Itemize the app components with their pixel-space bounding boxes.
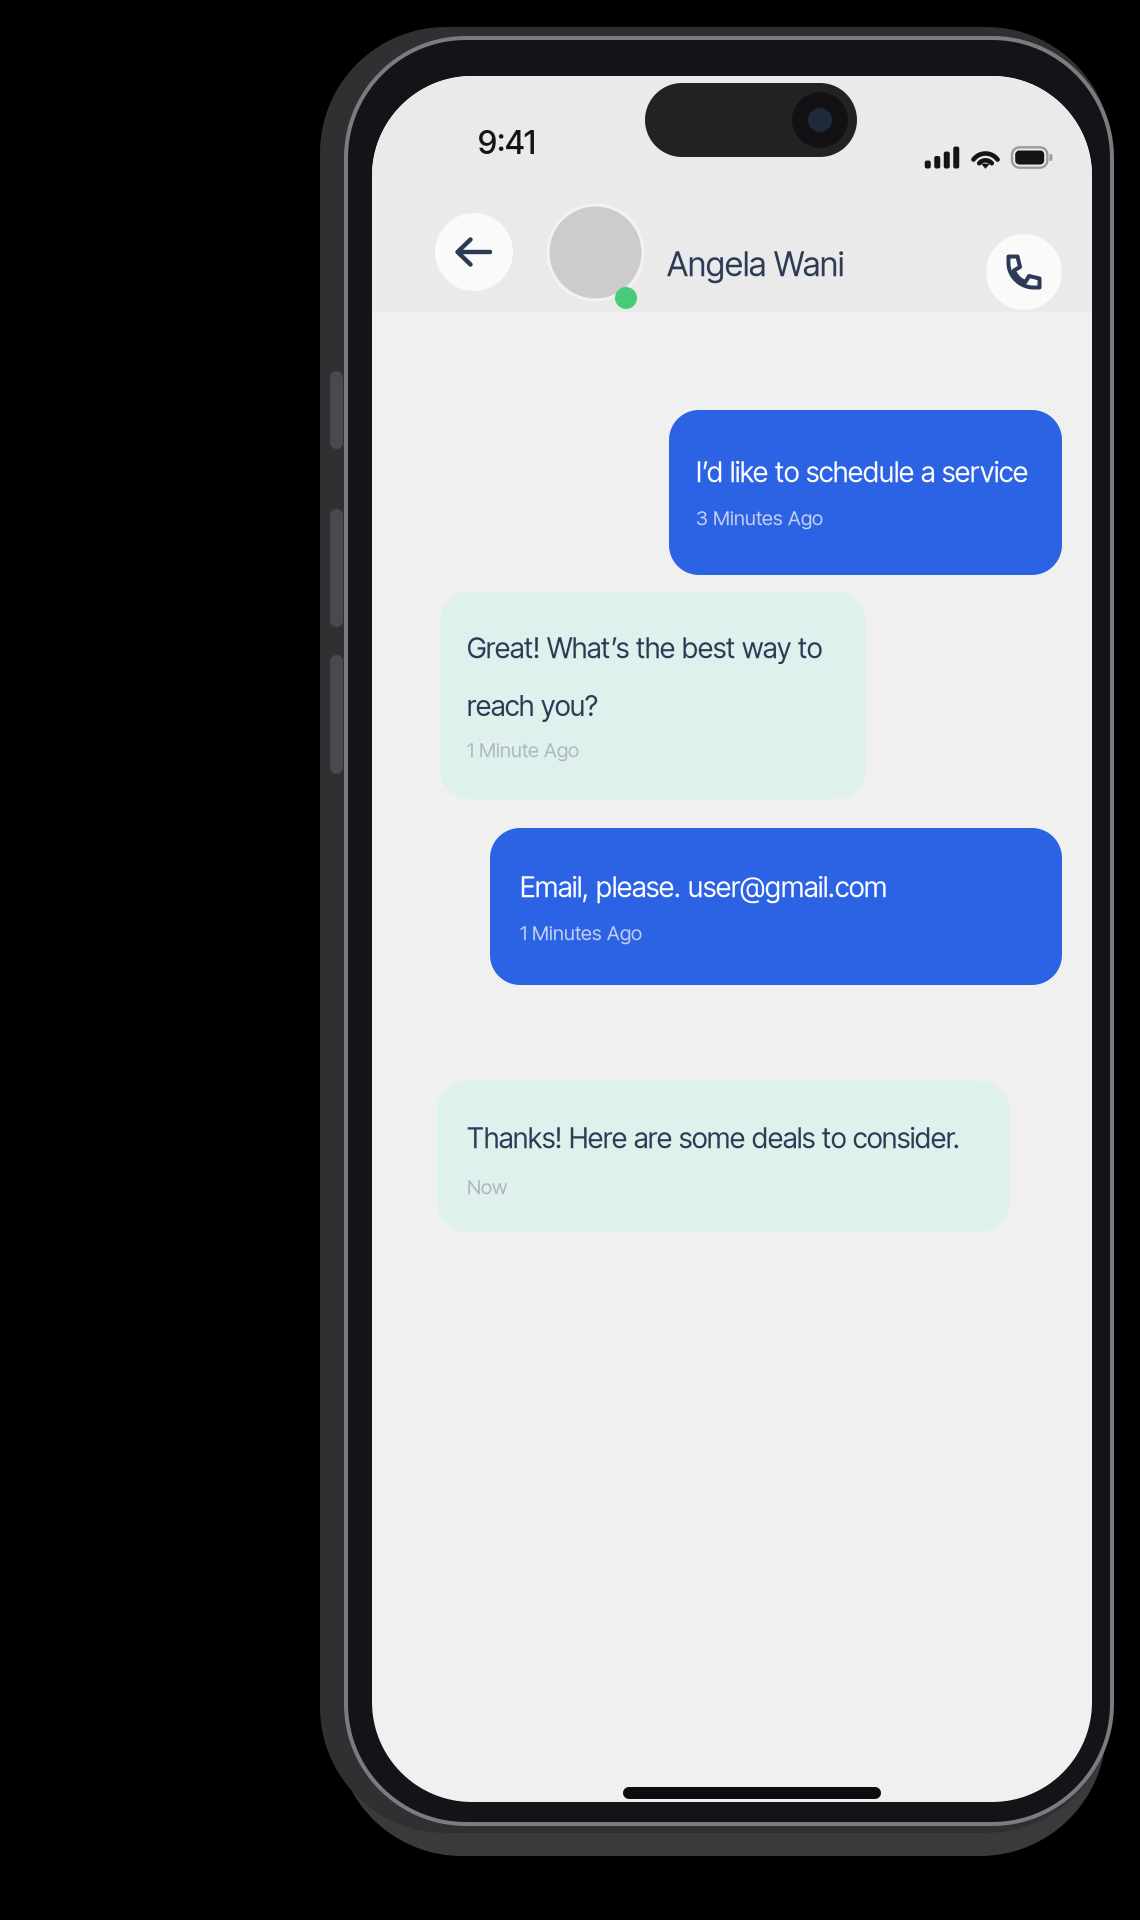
staticText: Angela Wani	[667, 244, 844, 284]
staticText: Thanks! Here are some deals to consider.	[467, 1121, 960, 1155]
staticText: 1 Minutes Ago	[520, 921, 642, 945]
staticText: I’d like to schedule a service	[696, 455, 1028, 489]
button[interactable]: Back	[435, 213, 513, 291]
staticText: 1 Minute Ago	[467, 738, 579, 762]
staticText: Now	[467, 1175, 507, 1199]
staticText: 3 Minutes Ago	[696, 506, 823, 530]
button[interactable]: Call	[986, 234, 1062, 310]
staticText: 9:41	[478, 123, 536, 162]
staticText: Great! What’s the best way to	[467, 631, 822, 665]
staticText: Email, please. user@gmail.com	[520, 870, 887, 904]
staticText: reach you?	[467, 689, 598, 723]
